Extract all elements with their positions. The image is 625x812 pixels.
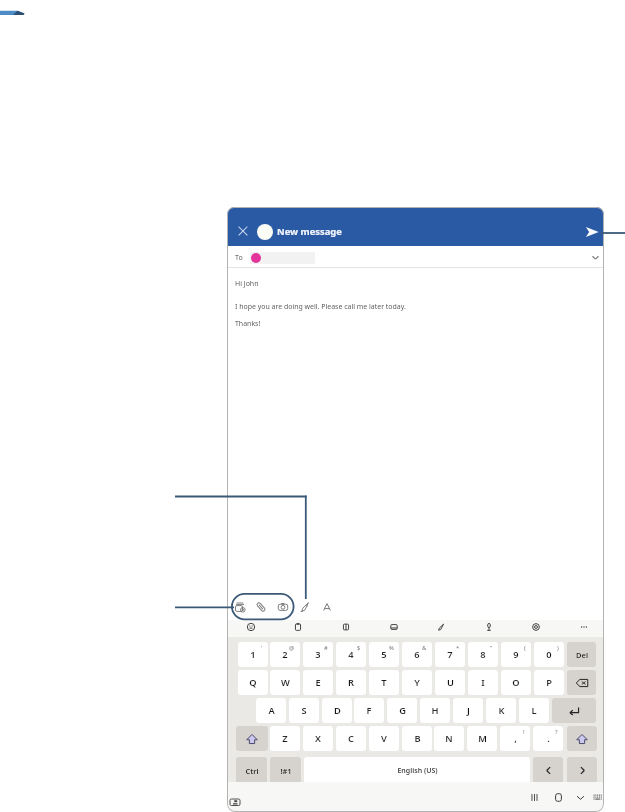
button[interactable]: Text formatting [316,596,338,618]
staticText: # [324,644,328,652]
staticText: 8 [480,648,486,661]
staticText: U [447,676,454,689]
button[interactable]: Expand recipients [587,249,603,265]
staticText: W [281,676,290,689]
staticText: 2 [282,648,288,661]
button[interactable]: T [369,670,399,695]
button[interactable]: E [303,670,333,695]
button[interactable]: Send [580,220,604,244]
button[interactable]: I [468,670,498,695]
button[interactable]: C [336,726,366,751]
button[interactable]: S [289,698,319,723]
staticText: G [399,704,406,717]
button[interactable]: K [486,698,516,723]
button[interactable]: 8 [468,642,498,667]
button[interactable]: Z [270,726,300,751]
staticText: F [366,704,372,717]
staticText: T [381,676,387,689]
staticText: P [546,676,552,689]
button[interactable]: 1 [238,642,268,667]
button[interactable]: P [534,670,564,695]
button[interactable]: Hide keyboard [227,795,243,811]
button[interactable]: One-handed mode [385,618,403,635]
button[interactable]: 9 [501,642,531,667]
staticText: Y [414,676,420,689]
button[interactable]: F [354,698,384,723]
button[interactable]: More options [575,618,593,635]
button[interactable]: M [467,726,497,751]
button[interactable]: Voice input [480,618,498,635]
staticText: C [348,732,354,745]
button[interactable]: Close [232,220,253,241]
staticText: . [547,732,550,745]
button[interactable]: J [453,698,483,723]
staticText: & [422,644,427,652]
button[interactable]: Gallery [229,596,251,618]
button[interactable]: 6 [402,642,432,667]
staticText: Hi John [235,279,259,289]
staticText: ! [523,728,525,736]
staticText: I hope you are doing well. Please call m… [235,302,406,312]
button[interactable]: L [519,698,549,723]
button[interactable]: A [256,698,286,723]
button[interactable]: Split keyboard [337,618,355,635]
button[interactable]: Home [550,789,566,805]
button[interactable]: 3 [303,642,333,667]
button[interactable]: Shift [236,726,268,751]
staticText: @ [289,644,295,652]
button[interactable]: H [420,698,450,723]
button[interactable]: Next [567,757,597,784]
staticText: K [498,704,505,717]
button[interactable]: B [402,726,432,751]
button[interactable]: X [303,726,333,751]
button[interactable]: Keyboard layout [589,789,604,805]
button[interactable]: 2 [270,642,300,667]
staticText: ? [555,728,558,736]
button[interactable]: Back [572,789,588,805]
staticText: J [467,704,470,717]
button[interactable]: Handwriting [294,596,316,618]
staticText: S [301,704,307,717]
button[interactable]: 5 [369,642,399,667]
staticText: " [490,644,493,652]
staticText: , [514,732,517,745]
button[interactable]: Y [402,670,432,695]
button[interactable]: Handwriting [432,618,450,635]
button[interactable]: Recents [526,789,542,805]
staticText: I [481,676,485,689]
button[interactable]: U [435,670,465,695]
button[interactable]: Emoji [242,618,260,635]
staticText: X [315,732,321,745]
button[interactable]: Enter [552,698,596,723]
button[interactable]: O [501,670,531,695]
button[interactable]: Attach file [250,596,272,618]
button[interactable]: !#1 [270,757,301,784]
button[interactable]: Backspace [567,670,596,695]
button[interactable]: Clipboard [289,618,307,635]
staticText: A [268,704,275,717]
button[interactable]: , [500,726,530,751]
button[interactable]: Shift [567,726,597,751]
button[interactable]: English (US) [304,757,530,784]
button[interactable]: Camera [272,596,294,618]
button[interactable]: V [369,726,399,751]
button[interactable]: R [336,670,366,695]
button[interactable]: 0 [534,642,564,667]
button[interactable]: W [270,670,300,695]
button[interactable]: Del [567,642,596,667]
button[interactable]: Previous [533,757,563,784]
staticText: Del [576,650,588,660]
button[interactable]: Settings [527,618,545,635]
staticText: 3 [315,648,321,661]
button[interactable]: N [434,726,464,751]
staticText: 0 [546,648,552,661]
button[interactable]: Q [238,670,268,695]
button[interactable]: 4 [336,642,366,667]
button[interactable]: Ctrl [236,757,267,784]
button[interactable]: D [322,698,352,723]
staticText: R [348,676,354,689]
button[interactable]: G [387,698,417,723]
button[interactable]: 7 [435,642,465,667]
staticText: D [334,704,341,717]
button[interactable]: . [533,726,563,751]
